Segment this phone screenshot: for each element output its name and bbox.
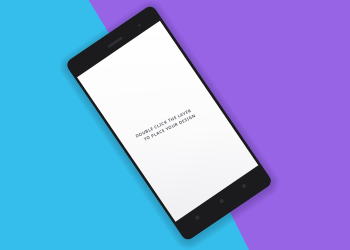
button[interactable]: Phone mockup: [0, 0, 350, 250]
